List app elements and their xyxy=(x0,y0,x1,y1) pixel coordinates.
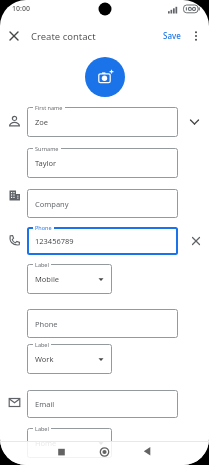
staticText: Phone xyxy=(35,224,52,231)
button[interactable] xyxy=(96,443,113,460)
button[interactable] xyxy=(6,28,22,44)
button[interactable]: Save xyxy=(158,27,186,43)
staticText: Save xyxy=(163,30,181,41)
staticText: Label xyxy=(35,425,49,432)
button[interactable]: Email xyxy=(27,390,178,418)
button[interactable]: Mobile xyxy=(27,264,112,294)
button[interactable]: Work xyxy=(27,344,112,374)
staticText: Surname xyxy=(35,145,59,152)
button[interactable] xyxy=(187,114,202,129)
button[interactable] xyxy=(189,28,203,44)
staticText: Work xyxy=(35,354,54,364)
staticText: Mobile xyxy=(35,274,60,284)
staticText: Phone xyxy=(35,319,58,329)
staticText: Email xyxy=(35,399,55,409)
staticText: Label xyxy=(35,261,49,268)
staticText: Home xyxy=(35,438,57,448)
staticText: 10:00 xyxy=(12,4,30,14)
button[interactable]: Zoe xyxy=(27,107,178,137)
button[interactable]: 123456789 xyxy=(27,227,178,255)
staticText: Company xyxy=(35,199,69,209)
button[interactable] xyxy=(53,443,70,460)
button[interactable]: Home xyxy=(27,428,112,458)
button[interactable]: Company xyxy=(27,189,178,218)
staticText: First name xyxy=(35,104,63,111)
button[interactable]: Taylor xyxy=(27,148,178,178)
staticText: Zoe xyxy=(35,117,49,127)
staticText: Label xyxy=(35,341,49,348)
staticText: Create contact xyxy=(31,30,96,43)
staticText: 123456789 xyxy=(35,236,74,246)
button[interactable]: Phone xyxy=(27,309,178,338)
staticText: Taylor xyxy=(35,158,57,168)
button[interactable] xyxy=(189,234,203,248)
button[interactable] xyxy=(139,443,156,460)
button[interactable] xyxy=(85,57,125,97)
